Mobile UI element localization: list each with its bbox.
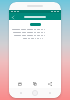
button[interactable]: Share [46,80,54,88]
button[interactable]: Copy [31,80,39,88]
button[interactable]: Verse marker [30,23,41,26]
button[interactable]: Home [32,90,38,96]
button[interactable]: Bookmark [16,80,24,88]
button[interactable]: Back [11,15,15,19]
